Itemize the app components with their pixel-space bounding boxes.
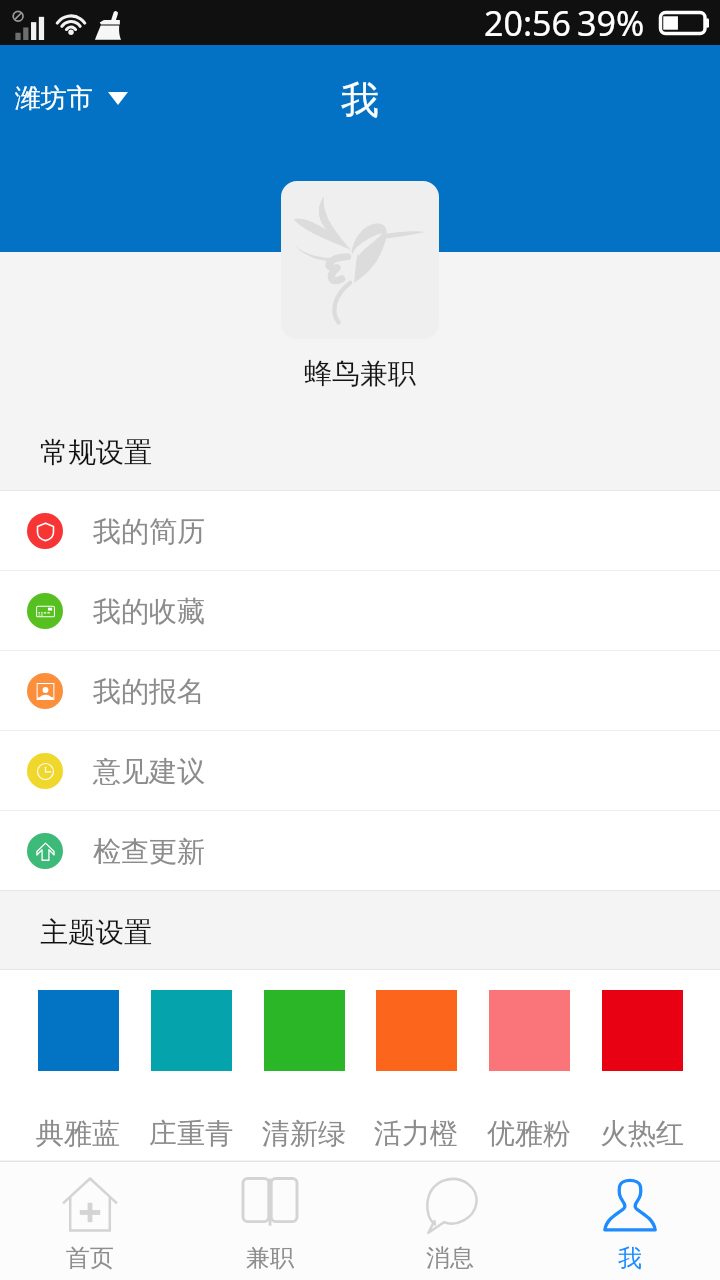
- button[interactable]: 潍坊市: [0, 69, 144, 128]
- button[interactable]: 我的收藏: [0, 571, 720, 651]
- button[interactable]: 典雅蓝: [36, 990, 120, 1151]
- staticText: 典雅蓝: [36, 1116, 120, 1151]
- staticText: 我: [618, 1243, 642, 1273]
- button[interactable]: 优雅粉: [487, 990, 571, 1151]
- staticText: 检查更新: [93, 834, 205, 869]
- button[interactable]: 清新绿: [262, 990, 346, 1151]
- staticText: 清新绿: [262, 1116, 346, 1151]
- staticText: 39%: [577, 0, 645, 45]
- button[interactable]: 我的简历: [0, 491, 720, 571]
- button[interactable]: 我: [540, 1161, 720, 1280]
- staticText: 20:56: [484, 0, 571, 45]
- button[interactable]: 活力橙: [374, 990, 458, 1151]
- staticText: 我: [341, 76, 379, 124]
- button[interactable]: 首页: [0, 1161, 180, 1280]
- staticText: 常规设置: [40, 435, 152, 470]
- staticText: 潍坊市: [15, 82, 93, 115]
- button[interactable]: 兼职: [180, 1161, 360, 1280]
- staticText: 我的收藏: [93, 594, 205, 629]
- staticText: 首页: [66, 1243, 114, 1273]
- button[interactable]: 意见建议: [0, 731, 720, 811]
- staticText: 意见建议: [93, 754, 205, 789]
- staticText: 我的简历: [93, 514, 205, 549]
- button[interactable]: 检查更新: [0, 811, 720, 891]
- button[interactable]: 我的报名: [0, 651, 720, 731]
- staticText: 主题设置: [40, 915, 152, 950]
- staticText: 我的报名: [93, 674, 205, 709]
- staticText: 活力橙: [374, 1116, 458, 1151]
- staticText: 蜂鸟兼职: [304, 356, 416, 391]
- button[interactable]: 火热红: [600, 990, 684, 1151]
- button[interactable]: 庄重青: [149, 990, 233, 1151]
- button[interactable]: 消息: [360, 1161, 540, 1280]
- staticText: 兼职: [246, 1243, 294, 1273]
- staticText: 优雅粉: [487, 1116, 571, 1151]
- staticText: 庄重青: [149, 1116, 233, 1151]
- button[interactable]: 蜂鸟兼职 app logo: [281, 181, 439, 339]
- staticText: 消息: [426, 1243, 474, 1273]
- staticText: 火热红: [600, 1116, 684, 1151]
